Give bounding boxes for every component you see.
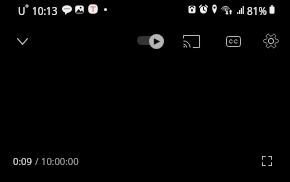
button[interactable]: Settings xyxy=(258,28,284,54)
staticText: 81% xyxy=(247,4,267,18)
button[interactable]: Cast to device xyxy=(178,28,204,54)
staticText: U xyxy=(18,4,26,18)
button[interactable]: Collapse player xyxy=(10,29,34,53)
staticText: 0:09 xyxy=(13,155,35,168)
button[interactable]: Subtitles xyxy=(220,28,246,54)
staticText: 10:13 xyxy=(32,4,58,18)
button[interactable]: Enter fullscreen xyxy=(255,149,279,173)
button[interactable]: Autoplay xyxy=(133,30,167,52)
staticText: / 10:00:00 xyxy=(35,155,79,168)
